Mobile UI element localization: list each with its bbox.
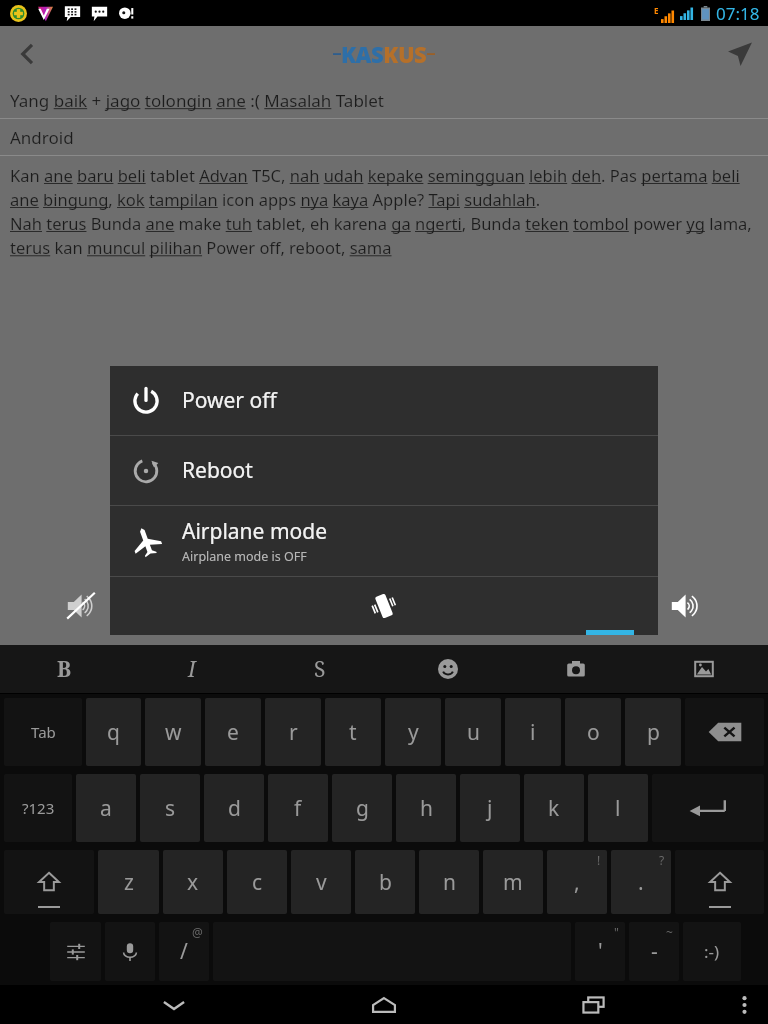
button[interactable]: Yang baik + jago tolongin ane :( Masalah…: [0, 82, 768, 118]
staticText: .: [638, 868, 644, 897]
staticText: p: [647, 718, 660, 747]
staticText: o: [587, 718, 600, 747]
staticText: ?123: [22, 798, 55, 818]
button[interactable]: x: [163, 850, 223, 914]
button[interactable]: Home: [348, 985, 420, 1024]
button[interactable]: Vibrate mode: [292, 577, 475, 635]
staticText: !: [597, 852, 601, 868]
button[interactable]: q: [86, 698, 141, 766]
button[interactable]: u: [445, 698, 501, 766]
staticText: e: [227, 718, 239, 747]
button[interactable]: Camera: [512, 645, 640, 693]
button[interactable]: Backspace: [685, 698, 764, 766]
button[interactable]: Enter: [652, 774, 764, 842]
button[interactable]: Power off: [110, 366, 658, 435]
staticText: I: [188, 655, 196, 684]
staticText: S: [314, 655, 326, 684]
button[interactable]: e: [205, 698, 261, 766]
button[interactable]: Settings: [50, 922, 101, 981]
staticText: b: [379, 868, 392, 897]
button[interactable]: ,: [547, 850, 607, 914]
button[interactable]: Send: [712, 26, 768, 82]
button[interactable]: Shift: [675, 850, 764, 914]
staticText: Android: [10, 126, 74, 149]
staticText: E: [654, 5, 659, 16]
staticText: -: [651, 937, 658, 966]
staticText: m: [503, 868, 523, 897]
button[interactable]: More options: [720, 985, 768, 1024]
button[interactable]: ?123: [4, 774, 72, 842]
button[interactable]: o: [565, 698, 621, 766]
button[interactable]: Back: [0, 26, 56, 82]
staticText: ': [598, 937, 603, 966]
button[interactable]: :-): [683, 922, 741, 981]
button[interactable]: Tab: [4, 698, 82, 766]
staticText: Tab: [31, 722, 56, 742]
button[interactable]: -: [629, 922, 679, 981]
staticText: @: [192, 924, 203, 940]
staticText: z: [124, 868, 134, 897]
staticText: c: [252, 868, 263, 897]
staticText: i: [530, 718, 536, 747]
staticText: KASKUS: [341, 39, 427, 69]
staticText: Power off: [182, 386, 277, 415]
staticText: ,: [574, 868, 580, 897]
button[interactable]: Kan ane baru beli tablet Advan T5C, nah …: [0, 164, 768, 259]
button[interactable]: Android: [0, 119, 768, 155]
button[interactable]: j: [460, 774, 520, 842]
button[interactable]: b: [355, 850, 415, 914]
button[interactable]: Voice input: [105, 922, 155, 981]
button[interactable]: Sound on: [475, 577, 658, 635]
button[interactable]: g: [332, 774, 392, 842]
button[interactable]: Recent apps: [558, 985, 630, 1024]
button[interactable]: f: [268, 774, 328, 842]
button[interactable]: .: [611, 850, 671, 914]
button[interactable]: n: [419, 850, 479, 914]
button[interactable]: Bold: [0, 645, 128, 693]
button[interactable]: Insert image: [640, 645, 768, 693]
staticText: n: [443, 868, 456, 897]
button[interactable]: Emoticon: [384, 645, 512, 693]
button[interactable]: r: [265, 698, 321, 766]
button[interactable]: s: [140, 774, 200, 842]
button[interactable]: ': [575, 922, 625, 981]
staticText: /: [180, 937, 188, 966]
staticText: a: [100, 794, 112, 823]
button[interactable]: y: [385, 698, 441, 766]
staticText: t: [349, 718, 357, 747]
button[interactable]: Shift: [4, 850, 94, 914]
staticText: j: [487, 794, 493, 823]
button[interactable]: Italic: [128, 645, 256, 693]
staticText: :-): [704, 940, 720, 963]
button[interactable]: Airplane mode: [110, 506, 658, 576]
button[interactable]: k: [524, 774, 584, 842]
button[interactable]: i: [505, 698, 561, 766]
button[interactable]: c: [227, 850, 287, 914]
staticText: d: [228, 794, 241, 823]
staticText: B: [57, 655, 72, 684]
button[interactable]: p: [625, 698, 681, 766]
staticText: s: [165, 794, 176, 823]
staticText: v: [316, 868, 327, 897]
staticText: u: [467, 718, 480, 747]
button[interactable]: d: [204, 774, 264, 842]
staticText: f: [294, 794, 302, 823]
staticText: Airplane mode is OFF: [182, 548, 307, 565]
button[interactable]: a: [76, 774, 136, 842]
staticText: ": [614, 924, 619, 940]
button[interactable]: w: [145, 698, 201, 766]
button[interactable]: h: [396, 774, 456, 842]
button[interactable]: /: [159, 922, 209, 981]
button[interactable]: t: [325, 698, 381, 766]
button[interactable]: Hide keyboard: [138, 985, 210, 1024]
staticText: h: [420, 794, 433, 823]
button[interactable]: z: [98, 850, 159, 914]
staticText: w: [165, 718, 182, 747]
button[interactable]: v: [291, 850, 351, 914]
button[interactable]: l: [588, 774, 648, 842]
button[interactable]: Strikethrough: [256, 645, 384, 693]
button[interactable]: m: [483, 850, 543, 914]
button[interactable]: Reboot: [110, 436, 658, 505]
